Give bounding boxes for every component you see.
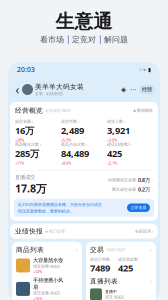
staticText: +28% bbox=[15, 137, 24, 142]
staticText: ◈ 数据概览 bbox=[133, 108, 153, 113]
staticText: 10/20-10/27 bbox=[106, 247, 125, 252]
staticText: 16万 bbox=[15, 124, 34, 137]
staticText: 近21日内累积花费赠品有赠，为您分析当日成交 bbox=[18, 202, 102, 207]
staticText: ◈ bbox=[121, 86, 126, 93]
staticText: 经营概览 bbox=[15, 106, 43, 115]
staticText: › bbox=[150, 246, 152, 253]
staticText: 经营 bbox=[142, 86, 152, 93]
staticText: 0.2万 bbox=[138, 186, 150, 193]
staticText: 商品点击次数 › bbox=[61, 141, 87, 147]
staticText: ⋯ bbox=[130, 86, 137, 93]
staticText: 女装 · 4.8万粉丝 bbox=[35, 91, 63, 96]
staticText: 看市场 | 定竞对 | 解问题 bbox=[40, 34, 128, 44]
staticText: 商品列表 bbox=[16, 246, 44, 254]
staticText: 成交 86425 bbox=[105, 294, 124, 299]
staticText: 图文成交金额 bbox=[112, 187, 136, 192]
staticText: 17.8万 bbox=[15, 181, 47, 196]
staticText: › bbox=[152, 177, 153, 183]
staticText: 20:03 bbox=[17, 65, 35, 74]
staticText: 成交金额 › bbox=[15, 118, 33, 124]
staticText: 3,921 bbox=[107, 124, 130, 137]
button[interactable]: 全部应用 › bbox=[135, 228, 153, 234]
staticText: › bbox=[150, 278, 152, 285]
staticText: 425 bbox=[118, 262, 133, 274]
staticText: 425 bbox=[107, 147, 122, 160]
staticText: ◈ 每日必看 bbox=[45, 229, 65, 234]
staticText: 短视频成交金额 bbox=[108, 177, 136, 182]
staticText: ◌ ⌁ ▮ bbox=[139, 66, 151, 73]
staticText: 交易 bbox=[90, 246, 104, 254]
staticText: › bbox=[76, 246, 78, 253]
staticText: 直播成交 bbox=[15, 174, 35, 180]
staticText: +76% bbox=[33, 295, 42, 300]
staticText: 直播列表 bbox=[90, 277, 118, 285]
button[interactable]: 经营 bbox=[139, 85, 155, 94]
button[interactable]: Search bbox=[119, 86, 128, 93]
staticText: 7489 bbox=[90, 262, 110, 274]
staticText: +11% bbox=[15, 160, 24, 165]
staticText: 进店(访客数) › bbox=[107, 141, 131, 147]
button[interactable]: ◈ 数据概览 bbox=[133, 108, 153, 113]
staticText: 0.8万 bbox=[138, 176, 150, 183]
staticText: +8.6% bbox=[61, 160, 71, 165]
staticText: +5.9% bbox=[61, 137, 71, 142]
button[interactable]: 立即查看 bbox=[127, 203, 150, 212]
staticText: 成交退款数 bbox=[118, 257, 138, 262]
staticText: 美羊羊大码女装 bbox=[35, 83, 84, 91]
staticText: 成交金额 86425 bbox=[33, 290, 60, 295]
staticText: 2,489 bbox=[61, 124, 84, 137]
staticText: +12% bbox=[33, 269, 42, 274]
staticText: 成交件数 › bbox=[61, 118, 79, 124]
staticText: 大容量熬水壶 bbox=[33, 257, 63, 263]
button[interactable]: More bbox=[128, 86, 139, 93]
staticText: 直播中 bbox=[105, 289, 117, 294]
staticText: ‹ bbox=[15, 81, 19, 97]
staticText: 成交人数 › bbox=[107, 118, 125, 124]
staticText: › bbox=[152, 187, 153, 192]
staticText: 商品曝光次数 › bbox=[15, 141, 41, 147]
staticText: +2.1% bbox=[107, 160, 117, 165]
staticText: 今日实时 06/27 bbox=[45, 108, 71, 113]
staticText: 生意通 bbox=[55, 10, 112, 33]
staticText: +3.0% bbox=[107, 137, 117, 142]
staticText: 情况及重要数据，重要的机会。 bbox=[18, 209, 74, 213]
staticText: 业绩快报 bbox=[15, 227, 43, 235]
staticText: 84,489 bbox=[61, 147, 89, 160]
staticText: 285万 bbox=[15, 147, 39, 160]
button[interactable]: Back bbox=[13, 83, 22, 95]
staticText: 手持便携小风扇 bbox=[33, 277, 63, 290]
staticText: 成交订单数 bbox=[90, 257, 110, 262]
staticText: 立即查看 bbox=[130, 205, 146, 210]
staticText: 成交金额 86425 bbox=[33, 263, 60, 269]
staticText: 全部应用 › bbox=[135, 228, 153, 234]
